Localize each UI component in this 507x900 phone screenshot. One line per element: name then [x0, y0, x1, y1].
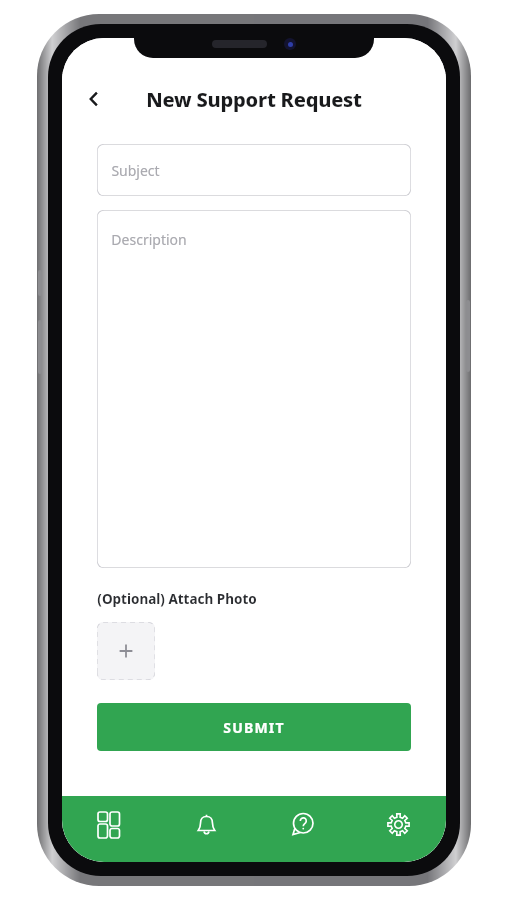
button[interactable]: Notifications [158, 796, 254, 852]
staticText: Subject [111, 161, 160, 180]
button[interactable]: Settings [350, 796, 446, 852]
button[interactable]: Back [74, 79, 114, 119]
staticText: Description [111, 230, 187, 249]
staticText: SUBMIT [223, 718, 285, 737]
button[interactable]: Help [254, 796, 350, 852]
button[interactable]: Attach photo [97, 622, 155, 680]
staticText: (Optional) Attach Photo [97, 590, 257, 608]
button[interactable]: SUBMIT [97, 703, 411, 751]
button[interactable]: Description [97, 210, 411, 568]
button[interactable]: Dashboard [62, 796, 158, 852]
staticText: New Support Request [146, 86, 362, 113]
button[interactable]: Subject [97, 144, 411, 196]
